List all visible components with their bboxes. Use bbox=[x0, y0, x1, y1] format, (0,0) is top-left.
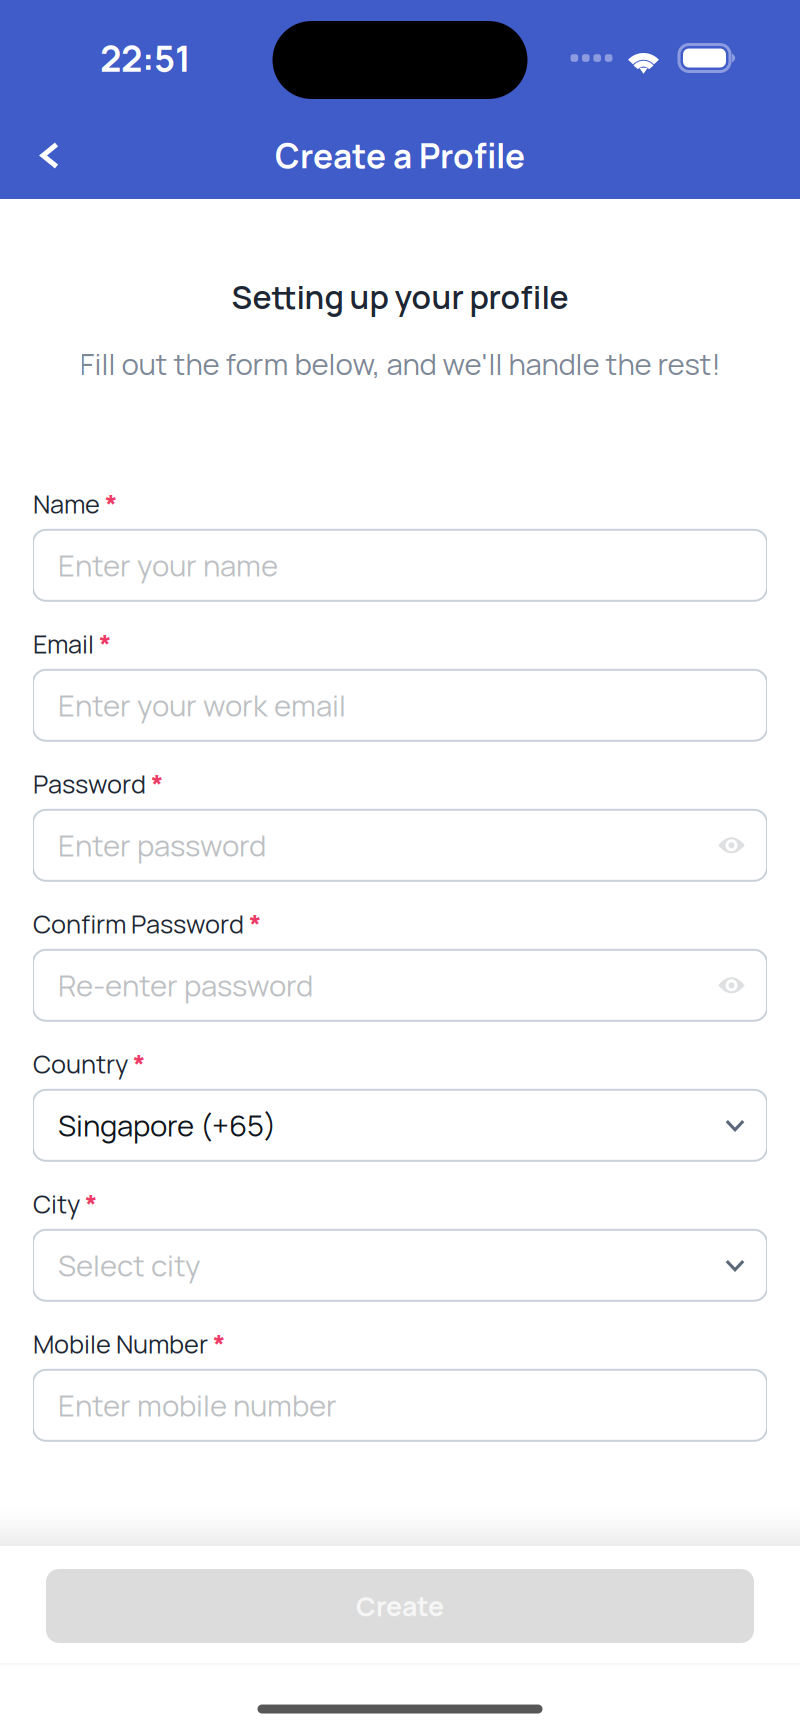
staticText: Name bbox=[33, 486, 100, 521]
staticText: 22:51 bbox=[100, 33, 191, 83]
staticText: * bbox=[146, 766, 163, 802]
button[interactable]: Create bbox=[46, 1569, 754, 1643]
staticText: Country bbox=[33, 1046, 128, 1081]
staticText: * bbox=[80, 1186, 97, 1222]
staticText: Create bbox=[356, 1588, 444, 1624]
staticText: Mobile Number bbox=[33, 1326, 208, 1361]
staticText: Create a Profile bbox=[275, 133, 525, 178]
staticText: City bbox=[33, 1186, 80, 1221]
staticText: * bbox=[208, 1326, 225, 1362]
staticText: Select city bbox=[58, 1245, 200, 1285]
staticText: Email bbox=[33, 626, 94, 661]
button[interactable]: Enter your name bbox=[33, 530, 767, 601]
staticText: * bbox=[100, 486, 117, 522]
staticText: Enter password bbox=[58, 825, 266, 865]
staticText: Confirm Password bbox=[33, 906, 244, 941]
button[interactable]: Enter mobile number bbox=[33, 1370, 767, 1441]
staticText: Enter your name bbox=[58, 545, 278, 585]
staticText: Re-enter password bbox=[58, 965, 313, 1005]
staticText: * bbox=[128, 1046, 145, 1082]
button[interactable]: Singapore (+65) bbox=[33, 1090, 767, 1161]
staticText: Fill out the form below, and we'll handl… bbox=[79, 344, 720, 384]
button[interactable]: Select city bbox=[33, 1230, 767, 1301]
button[interactable]: Enter password bbox=[33, 810, 767, 881]
staticText: Enter your work email bbox=[58, 685, 346, 725]
staticText: Setting up your profile bbox=[231, 275, 568, 319]
button[interactable]: Back bbox=[21, 126, 79, 184]
staticText: Singapore (+65) bbox=[58, 1105, 276, 1145]
staticText: Password bbox=[33, 766, 146, 801]
button[interactable]: Re-enter password bbox=[33, 950, 767, 1021]
staticText: * bbox=[244, 906, 261, 942]
staticText: Enter mobile number bbox=[58, 1385, 337, 1425]
staticText: * bbox=[94, 626, 111, 662]
button[interactable]: Enter your work email bbox=[33, 670, 767, 741]
